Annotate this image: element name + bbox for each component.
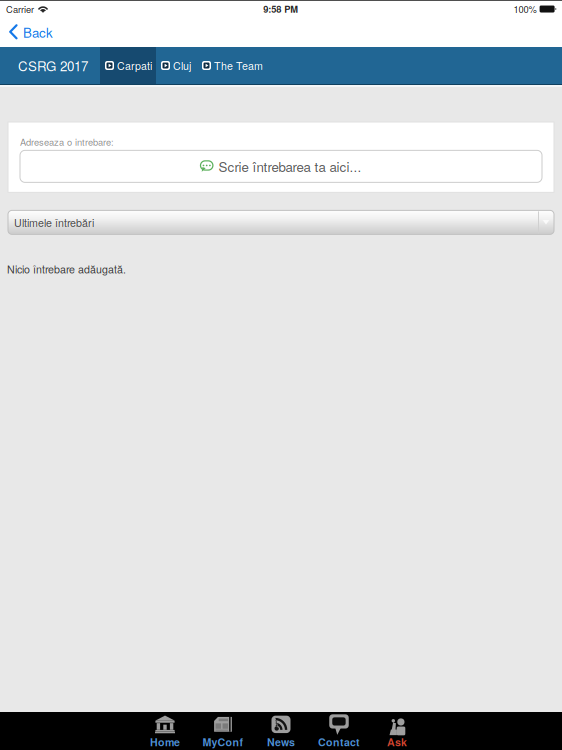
staticText: News	[267, 734, 295, 750]
staticText: Scrie întrebarea ta aici...	[218, 157, 361, 176]
button[interactable]: News	[252, 712, 310, 750]
staticText: CSRG 2017	[18, 56, 88, 75]
staticText: Carpati	[117, 58, 152, 73]
button[interactable]: Carpati	[100, 47, 156, 84]
button[interactable]: Home	[136, 712, 194, 750]
staticText: Nicio întrebare adăugată.	[7, 261, 126, 277]
button[interactable]: MyConf	[194, 712, 252, 750]
button[interactable]: Back	[0, 17, 53, 47]
staticText: 100%	[514, 2, 537, 16]
staticText: Ask	[387, 734, 407, 750]
staticText: Home	[150, 734, 180, 750]
staticText: 9:58 PM	[263, 2, 298, 16]
button[interactable]: Cluj	[156, 47, 196, 84]
staticText: Back	[23, 22, 53, 42]
button[interactable]: Contact	[310, 712, 368, 750]
button[interactable]: Ask	[368, 712, 426, 750]
button[interactable]: Ultimele întrebări	[0, 192, 562, 234]
staticText: Adreseaza o intrebare:	[20, 135, 114, 148]
staticText: Carrier	[6, 2, 34, 16]
button[interactable]: The Team	[196, 47, 269, 84]
staticText: MyConf	[202, 734, 243, 750]
staticText: Ultimele întrebări	[14, 215, 94, 230]
staticText: The Team	[214, 58, 263, 73]
staticText: Cluj	[173, 58, 191, 73]
staticText: Contact	[318, 734, 360, 750]
